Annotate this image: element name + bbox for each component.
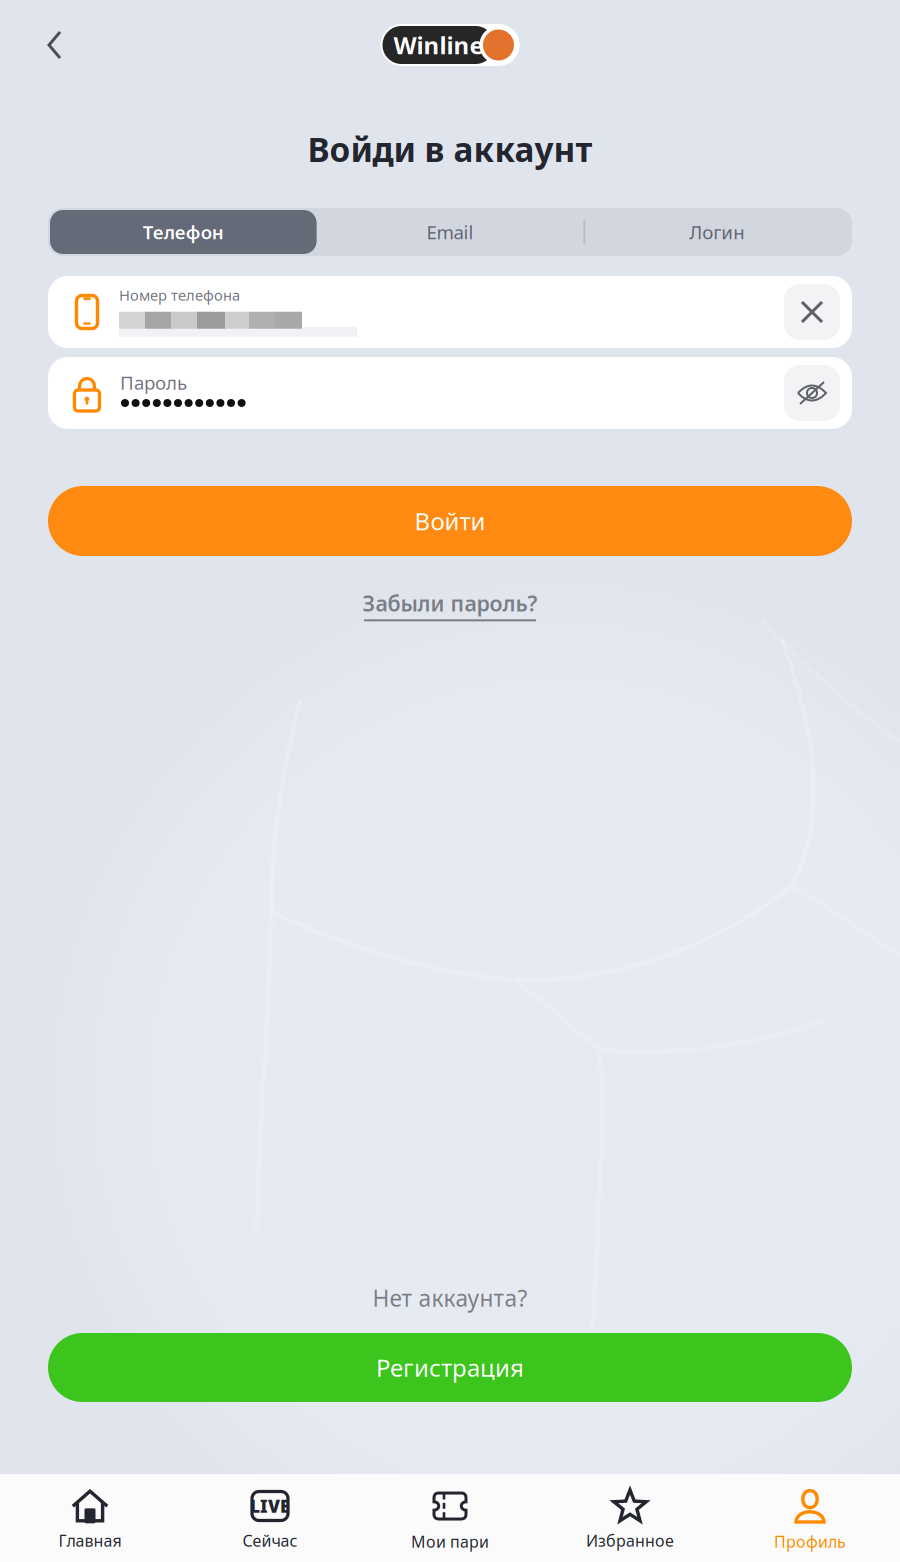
button[interactable]: Регистрация [48,1333,852,1402]
button[interactable]: Телефон [50,210,317,254]
button[interactable]: Войти [48,486,852,556]
button[interactable]: Логин [583,210,850,254]
staticText: LIVE [250,1494,290,1517]
button[interactable]: Back [26,16,84,74]
staticText: Главная [58,1530,121,1551]
staticText: Телефон [143,220,224,244]
staticText: Забыли пароль? [362,589,537,617]
staticText: Мои пари [411,1531,489,1552]
staticText: Войди в аккаунт [307,127,592,171]
staticText: Номер телефона [119,285,240,305]
staticText: Сейчас [242,1530,297,1551]
staticText: Winline [393,29,483,61]
staticText: Войти [414,505,485,537]
staticText: Логин [689,220,744,244]
staticText: Нет аккаунта? [372,1283,527,1313]
staticText: Избранное [586,1530,674,1551]
staticText: Регистрация [376,1352,524,1383]
button[interactable]: Забыли пароль? [362,556,537,621]
button[interactable]: Избранное [540,1489,720,1551]
button[interactable]: Главная [0,1489,180,1551]
staticText: Пароль [120,370,187,395]
button[interactable]: Email [317,210,583,254]
button[interactable]: Мои пари [360,1488,540,1552]
button[interactable]: Профиль [720,1488,900,1552]
button[interactable]: Show password [784,365,840,421]
button[interactable]: Clear phone number [784,284,840,340]
button[interactable]: LIVE [180,1489,360,1551]
staticText: Профиль [774,1531,846,1552]
staticText: Email [426,220,473,244]
